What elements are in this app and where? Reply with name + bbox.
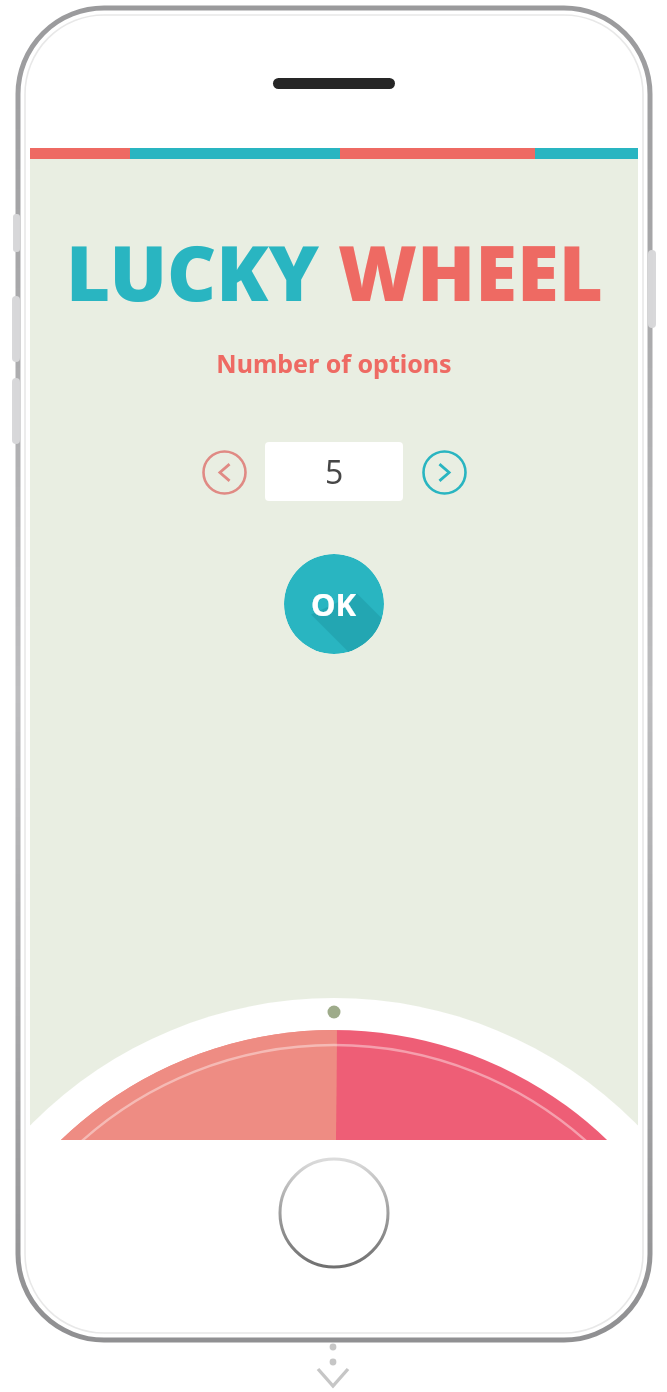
button[interactable]: Increase number of options xyxy=(418,446,470,498)
staticText: OK xyxy=(311,583,357,625)
staticText: 5 xyxy=(325,450,344,494)
button[interactable]: 5 xyxy=(265,442,403,501)
staticText: Number of options xyxy=(216,346,452,380)
button[interactable]: Decrease number of options xyxy=(198,446,250,498)
staticText: WHEEL xyxy=(338,220,603,324)
staticText: LUCKY xyxy=(66,220,320,324)
button[interactable]: OK xyxy=(284,554,384,654)
